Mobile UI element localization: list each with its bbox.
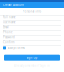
staticText: Full name <box>3 15 16 19</box>
staticText: Personal info <box>22 10 41 13</box>
staticText: Already a member? Sign in <box>14 64 50 67</box>
staticText: Phone <box>3 30 13 34</box>
button[interactable]: Accept terms <box>0 45 64 50</box>
staticText: Confirm <box>3 40 14 44</box>
button[interactable]: Already a member? Sign in <box>0 64 64 68</box>
staticText: Accept terms <box>7 46 24 50</box>
staticText: Username <box>3 20 16 24</box>
staticText: Password <box>3 35 15 39</box>
staticText: Email <box>3 25 9 29</box>
staticText: Sign Up <box>26 56 37 59</box>
button[interactable]: Sign Up <box>4 55 60 61</box>
staticText: Create Account <box>3 3 24 7</box>
